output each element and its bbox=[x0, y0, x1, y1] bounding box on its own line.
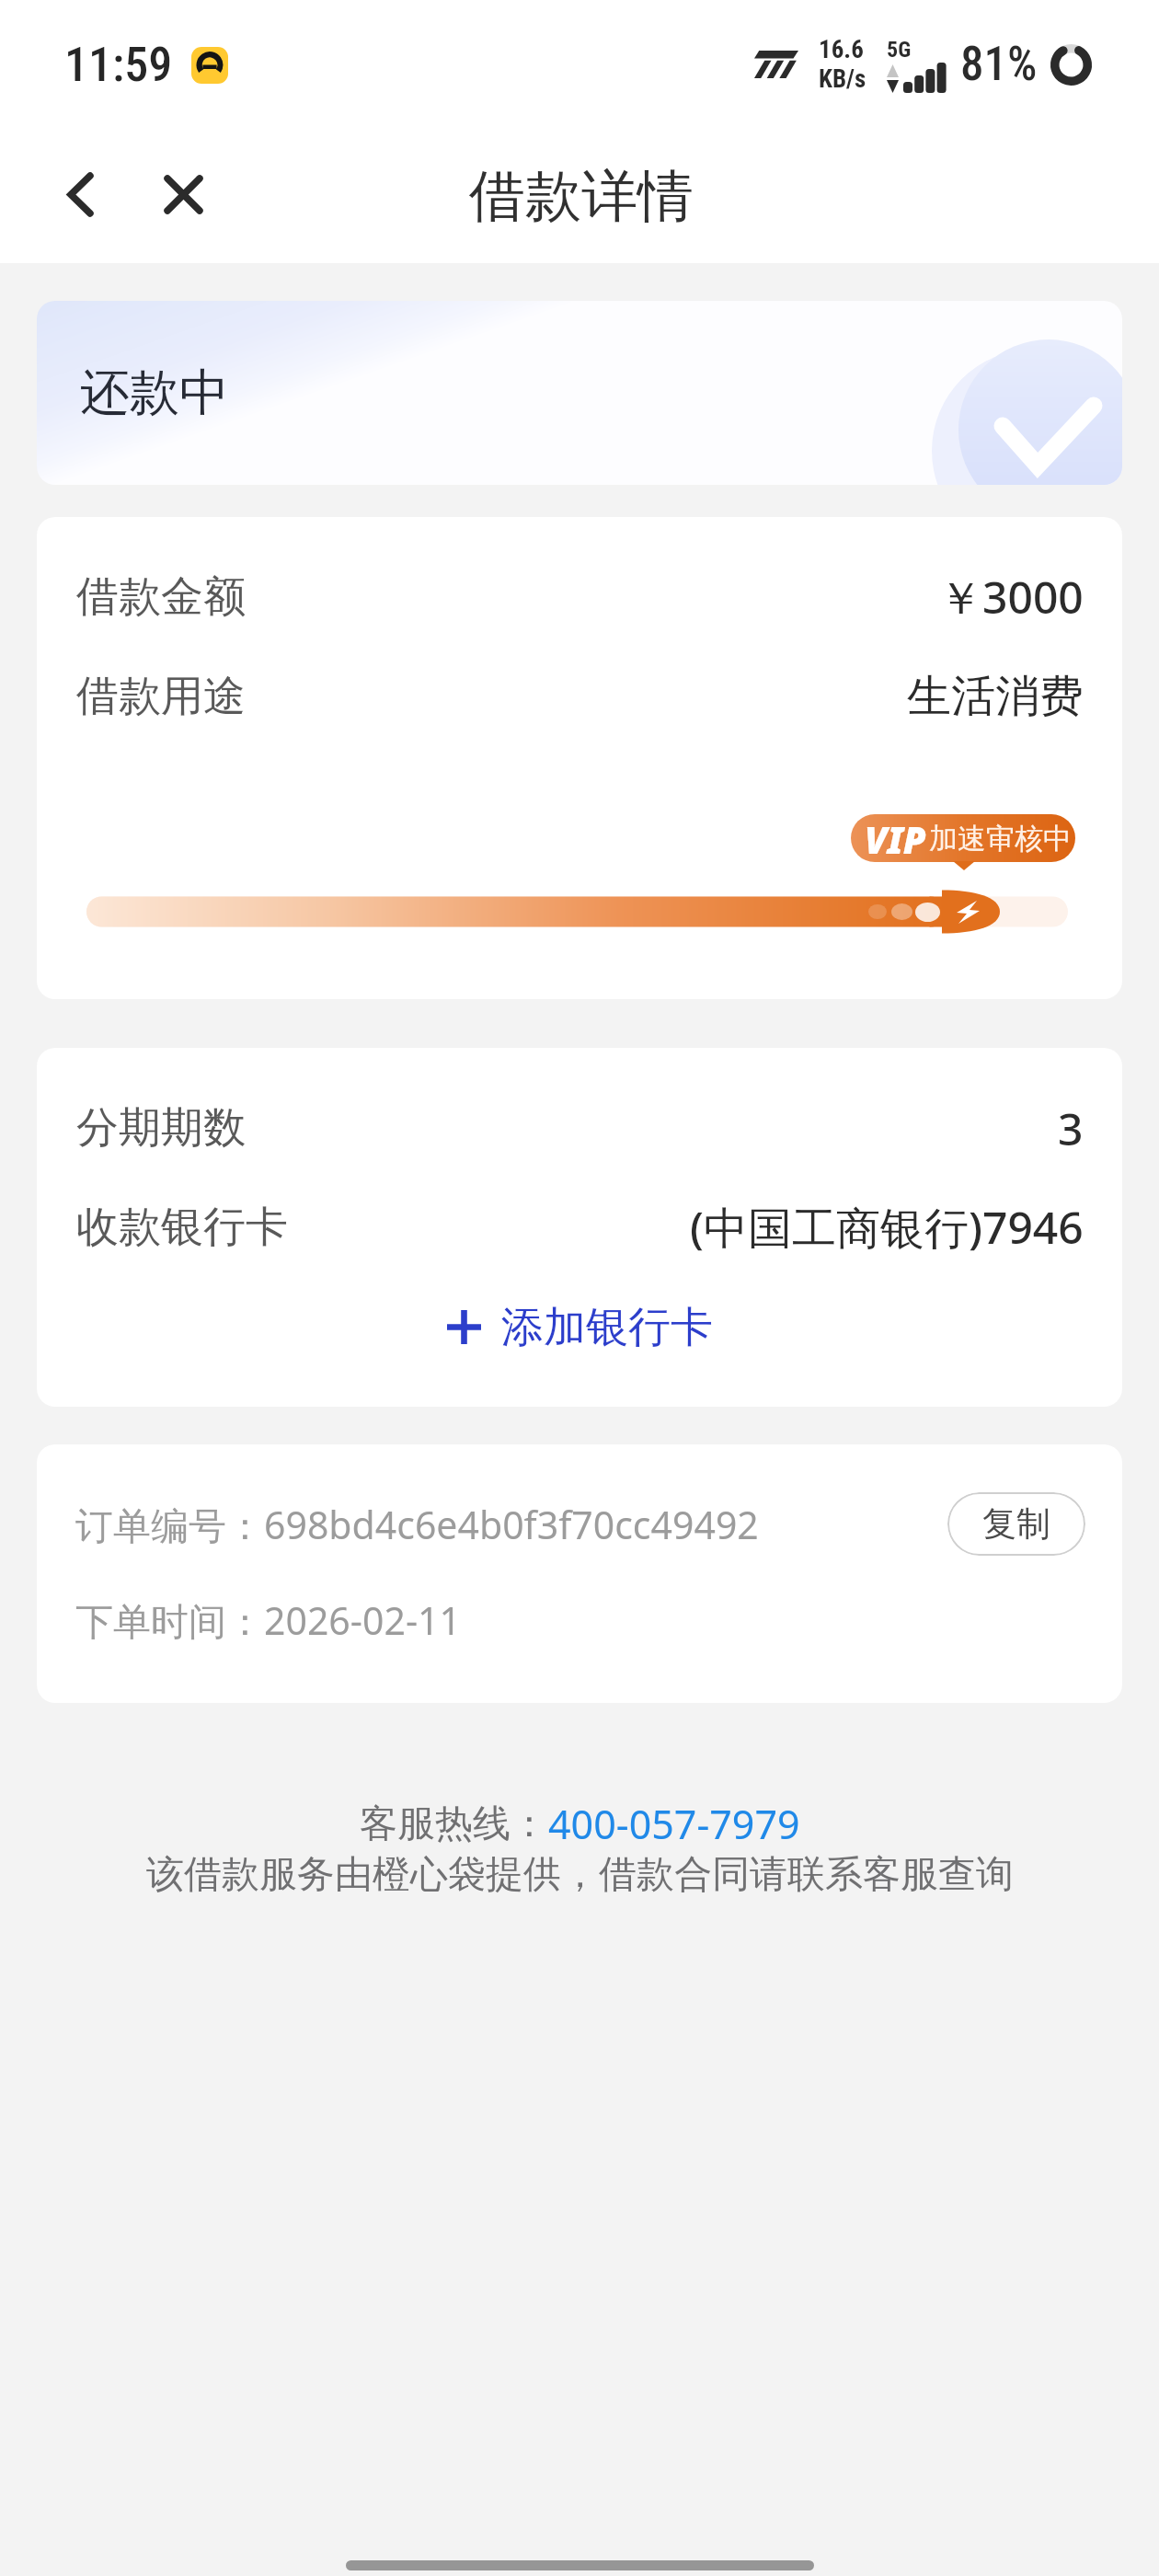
staticText: (中国工商银行)7946 bbox=[690, 1197, 1084, 1258]
staticText: 加速审核中 bbox=[929, 821, 1072, 857]
staticText: 5G bbox=[887, 37, 912, 63]
staticText: 分期期数 bbox=[76, 1101, 246, 1155]
staticText: 订单编号：698bd4c6e4b0f3f70cc49492 bbox=[75, 1499, 759, 1550]
staticText: 收款银行卡 bbox=[76, 1201, 288, 1254]
staticText: 下单时间：2026-02-11 bbox=[75, 1594, 462, 1646]
staticText: 还款中 bbox=[80, 362, 229, 424]
staticText: 借款用途 bbox=[76, 670, 246, 723]
staticText: 11:59 bbox=[64, 37, 173, 93]
staticText: ￥3000 bbox=[938, 567, 1084, 627]
staticText: 复制 bbox=[982, 1502, 1050, 1546]
button[interactable]: 400-057-7979 bbox=[548, 1797, 800, 1851]
staticText: 该借款服务由橙心袋提供，借款合同请联系客服查询 bbox=[146, 1851, 1014, 1899]
staticText: 客服热线： bbox=[360, 1800, 548, 1848]
button[interactable]: Close bbox=[148, 159, 218, 229]
staticText: 生活消费 bbox=[907, 669, 1084, 724]
staticText: 3 bbox=[1058, 1098, 1084, 1158]
staticText: 借款详情 bbox=[469, 161, 694, 232]
staticText: 添加银行卡 bbox=[501, 1301, 713, 1354]
button[interactable]: 还款中 bbox=[37, 301, 1122, 485]
button[interactable]: 添加银行卡 bbox=[427, 1290, 733, 1365]
staticText: 16.6 bbox=[819, 35, 864, 64]
button[interactable]: 收款银行卡 bbox=[37, 1178, 1122, 1277]
staticText: 借款金额 bbox=[76, 570, 246, 624]
button[interactable]: 复制 bbox=[947, 1492, 1085, 1556]
button[interactable]: Back bbox=[45, 159, 115, 229]
staticText: KB/s bbox=[819, 64, 866, 94]
staticText: VIP bbox=[865, 814, 926, 862]
staticText: 81% bbox=[960, 37, 1038, 92]
